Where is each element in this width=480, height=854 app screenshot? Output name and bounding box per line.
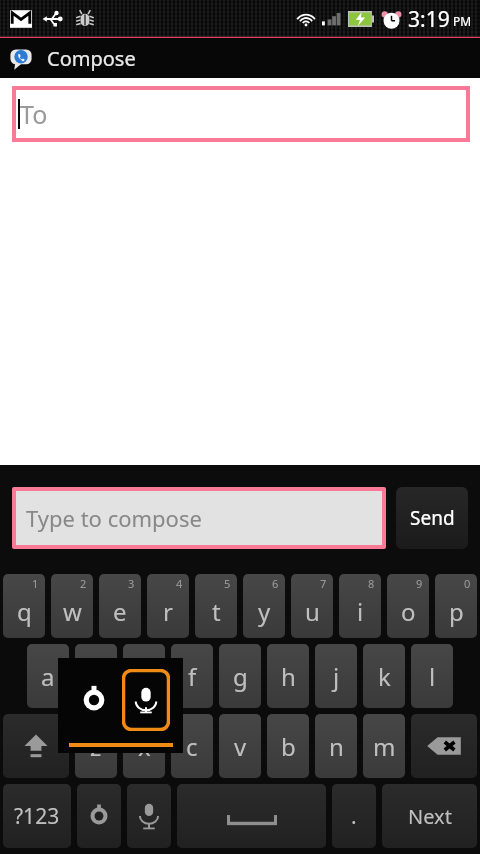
staticText: v <box>234 730 247 763</box>
button[interactable]: 1 <box>3 574 45 638</box>
button[interactable]: 2 <box>51 574 93 638</box>
other: App icon <box>9 47 33 71</box>
staticText: Send <box>410 505 455 531</box>
button[interactable]: 5 <box>195 574 237 638</box>
button[interactable]: 3 <box>99 574 141 638</box>
staticText: To <box>20 97 48 131</box>
staticText: 9 <box>416 576 423 591</box>
staticText: 5 <box>224 576 231 591</box>
staticText: o <box>401 595 416 628</box>
button[interactable]: Settings <box>77 784 121 848</box>
staticText: . <box>351 802 357 831</box>
staticText: 8 <box>368 576 375 591</box>
button[interactable]: Period <box>332 784 376 848</box>
staticText: a <box>41 660 55 693</box>
staticText: m <box>373 730 396 763</box>
button[interactable]: d <box>123 644 165 708</box>
staticText: g <box>233 660 248 693</box>
button[interactable]: l <box>411 644 453 708</box>
button[interactable]: Next <box>382 784 477 848</box>
button[interactable]: Symbols <box>3 784 71 848</box>
staticText: t <box>212 595 221 628</box>
button[interactable]: s <box>75 644 117 708</box>
button[interactable]: Space <box>177 784 326 848</box>
button[interactable]: 9 <box>387 574 429 638</box>
staticText: x <box>138 730 151 763</box>
button[interactable]: Send <box>396 487 468 549</box>
staticText: Compose <box>47 45 136 72</box>
staticText: 3:19 <box>408 5 450 34</box>
button[interactable]: 8 <box>339 574 381 638</box>
button[interactable]: n <box>315 714 357 778</box>
button[interactable]: To <box>16 90 466 138</box>
staticText: Next <box>408 803 452 830</box>
button[interactable]: f <box>171 644 213 708</box>
button[interactable]: Voice input <box>127 784 171 848</box>
staticText: q <box>17 595 32 628</box>
staticText: s <box>90 660 102 693</box>
button[interactable]: Input settings <box>72 678 116 722</box>
staticText: w <box>63 595 82 628</box>
staticText: p <box>449 595 464 628</box>
staticText: 6 <box>272 576 279 591</box>
staticText: 3 <box>128 576 135 591</box>
staticText: 4 <box>176 576 183 591</box>
button[interactable]: 0 <box>435 574 477 638</box>
button[interactable]: 6 <box>243 574 285 638</box>
staticText: u <box>305 595 320 628</box>
staticText: i <box>357 595 364 628</box>
button[interactable]: Delete <box>411 714 477 778</box>
staticText: 2 <box>80 576 87 591</box>
button[interactable]: Voice input <box>122 669 170 731</box>
button[interactable]: j <box>315 644 357 708</box>
button[interactable]: h <box>267 644 309 708</box>
staticText: j <box>333 660 340 693</box>
button[interactable]: m <box>363 714 405 778</box>
button[interactable]: z <box>75 714 117 778</box>
staticText: h <box>281 660 296 693</box>
staticText: b <box>281 730 296 763</box>
staticText: ?123 <box>14 802 60 831</box>
button[interactable]: k <box>363 644 405 708</box>
button[interactable]: a <box>27 644 69 708</box>
staticText: PM <box>453 13 472 29</box>
button[interactable]: 4 <box>147 574 189 638</box>
staticText: f <box>188 660 197 693</box>
staticText: l <box>429 660 436 693</box>
staticText: y <box>258 595 271 628</box>
button[interactable]: Shift <box>3 714 69 778</box>
staticText: 1 <box>32 576 39 591</box>
staticText: c <box>186 730 198 763</box>
button[interactable]: g <box>219 644 261 708</box>
staticText: n <box>329 730 344 763</box>
staticText: 0 <box>464 576 471 591</box>
staticText: 7 <box>320 576 327 591</box>
staticText: r <box>163 595 173 628</box>
button[interactable]: v <box>219 714 261 778</box>
button[interactable]: Type to compose <box>16 491 382 545</box>
staticText: z <box>90 730 102 763</box>
button[interactable]: c <box>171 714 213 778</box>
button[interactable]: 7 <box>291 574 333 638</box>
staticText: k <box>378 660 391 693</box>
staticText: e <box>113 595 127 628</box>
button[interactable]: b <box>267 714 309 778</box>
staticText: Type to compose <box>26 503 202 533</box>
button[interactable]: x <box>123 714 165 778</box>
staticText: d <box>137 660 152 693</box>
